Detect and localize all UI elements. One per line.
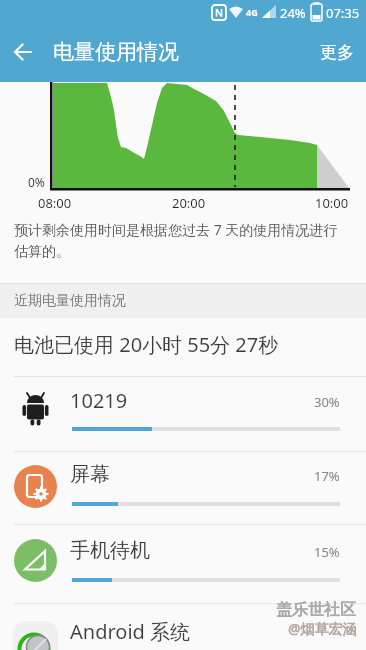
staticText: 4G: [246, 6, 258, 18]
staticText: 20:00: [172, 194, 206, 212]
staticText: 10:00: [315, 194, 349, 212]
button[interactable]: Android 系统: [0, 603, 366, 650]
staticText: 08:00: [38, 194, 72, 212]
staticText: 30%: [314, 393, 340, 411]
staticText: 近期电量使用情况: [14, 292, 126, 310]
staticText: 预计剩余使用时间是根据您过去 7 天的使用情况进行 估算的。: [14, 220, 338, 260]
staticText: Android 系统: [70, 618, 191, 645]
staticText: @烟草宏涵: [288, 619, 357, 638]
button[interactable]: 屏幕: [0, 451, 366, 524]
staticText: 07:35: [326, 4, 360, 22]
staticText: 17%: [314, 467, 340, 485]
staticText: 更多: [320, 42, 354, 63]
staticText: 0%: [28, 174, 45, 190]
staticText: 15%: [314, 543, 340, 561]
button[interactable]: [6, 35, 40, 69]
staticText: 24%: [280, 4, 306, 22]
staticText: 屏幕: [70, 462, 110, 487]
button[interactable]: 更多: [320, 37, 354, 68]
staticText: 电池已使用 20小时 55分 27秒: [14, 331, 279, 358]
button[interactable]: 手机待机: [0, 524, 366, 603]
button[interactable]: 10219: [0, 376, 366, 451]
staticText: 手机待机: [70, 538, 150, 563]
staticText: 10219: [70, 387, 128, 414]
staticText: 电量使用情况: [53, 39, 179, 65]
staticText: 盖乐世社区: [276, 600, 356, 620]
